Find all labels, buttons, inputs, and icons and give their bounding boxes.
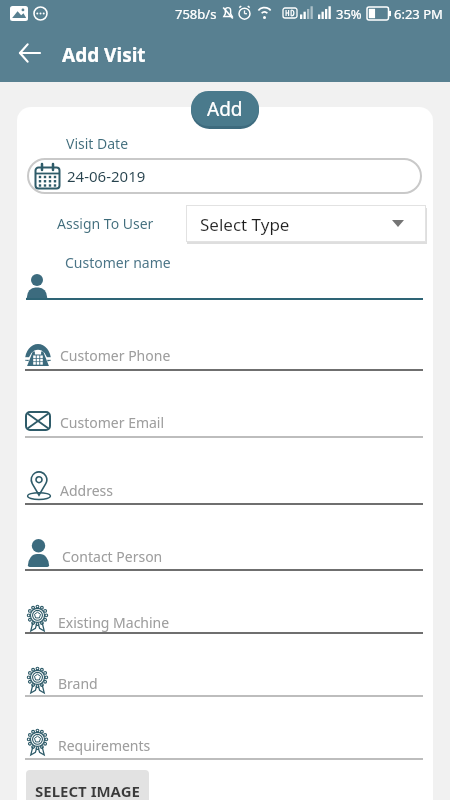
staticText: Requirements [58,736,151,755]
staticText: Brand [58,674,98,693]
button[interactable] [18,41,42,65]
staticText: 758b/s [175,5,217,23]
button[interactable]: Add [191,91,259,126]
staticText: 24-06-2019 [67,166,146,186]
staticText: Address [60,481,113,500]
button[interactable] [27,158,422,194]
button[interactable]: Select Type [186,205,426,242]
staticText: Contact Person [62,547,163,566]
staticText: SELECT IMAGE [35,781,140,800]
staticText: 6:23 PM [394,5,443,23]
staticText: Add Visit [62,42,146,68]
staticText: Select Type [200,213,290,236]
button[interactable]: SELECT IMAGE [26,770,149,800]
staticText: Customer Email [60,413,165,432]
staticText: Visit Date [66,134,129,153]
staticText: Customer name [65,253,171,272]
staticText: Customer Phone [60,346,171,365]
staticText: Add [207,96,243,122]
staticText: 35% [336,5,362,23]
staticText: Assign To User [57,214,154,233]
staticText: Existing Machine [58,613,170,632]
